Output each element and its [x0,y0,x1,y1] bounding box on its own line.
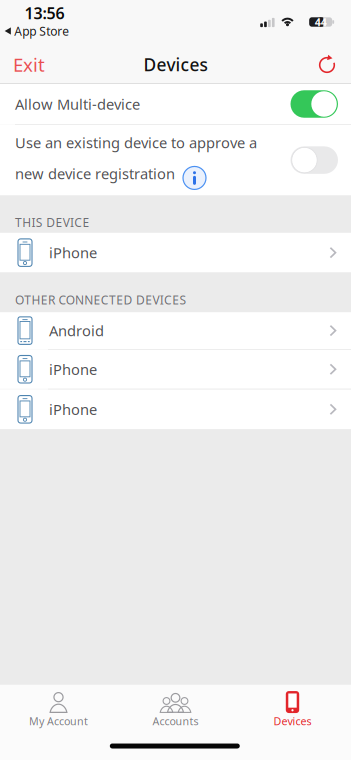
staticText: new device registration [15,164,175,183]
staticText: THIS DEVICE [15,214,89,230]
staticText: Accounts [152,714,198,728]
button[interactable]: iPhone [0,350,351,389]
staticText: iPhone [49,243,97,262]
staticText: Android [49,321,104,340]
button[interactable]: iPhone [0,389,351,429]
staticText: My Account [29,714,88,728]
staticText: App Store [14,23,69,39]
button[interactable]: Refresh [316,52,338,76]
button[interactable]: Android [0,312,351,349]
button[interactable]: Back to App Store [5,23,69,39]
button[interactable]: iPhone [0,233,351,272]
button[interactable]: Exit [13,52,45,77]
button[interactable]: Allow Multi-device [290,90,338,118]
staticText: 13:56 [24,2,64,24]
staticText: iPhone [49,400,97,419]
staticText: Devices [273,714,311,728]
staticText: Allow Multi-device [15,94,140,114]
staticText: iPhone [49,359,97,379]
staticText: Exit [13,52,45,77]
button[interactable]: Accounts [152,691,198,728]
staticText: 44 [315,15,327,29]
button[interactable]: Use an existing device to approve a new … [290,146,338,174]
staticText: Devices [143,53,207,76]
button[interactable]: More info [183,170,206,185]
staticText: OTHER CONNECTED DEVICES [15,292,186,308]
button[interactable]: My Account [29,691,88,728]
staticText: Use an existing device to approve a [15,133,257,152]
button[interactable]: Devices [273,691,311,728]
